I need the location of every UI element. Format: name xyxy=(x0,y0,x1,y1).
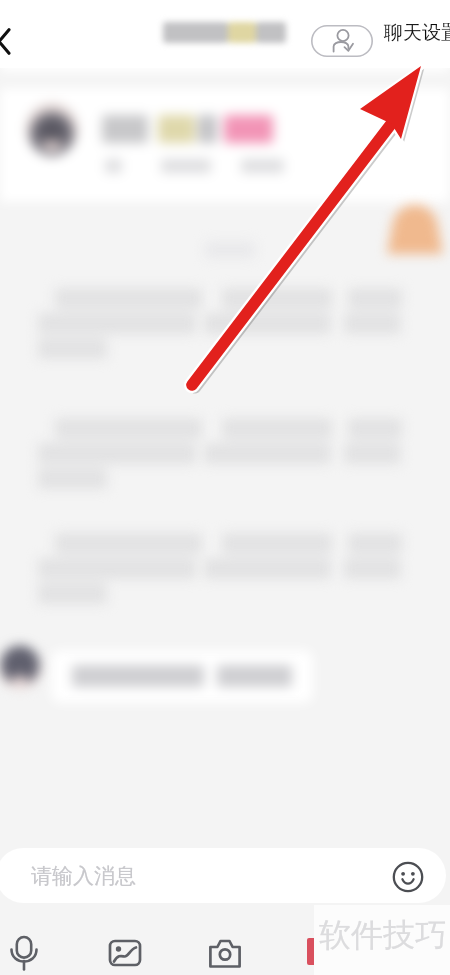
staticText: 软件技巧 xyxy=(319,915,447,955)
button[interactable]: Add friend xyxy=(311,25,373,57)
staticText: 请输入消息 xyxy=(31,863,136,889)
button[interactable]: Emoji xyxy=(390,859,426,895)
button[interactable]: Back xyxy=(0,19,24,63)
button[interactable]: 聊天设置 xyxy=(384,21,450,45)
button[interactable]: Photos xyxy=(103,931,147,975)
button[interactable]: Voice message xyxy=(2,930,46,974)
button[interactable] xyxy=(51,650,313,703)
button[interactable]: Camera xyxy=(203,932,247,975)
button[interactable]: 请输入消息 xyxy=(0,848,446,903)
